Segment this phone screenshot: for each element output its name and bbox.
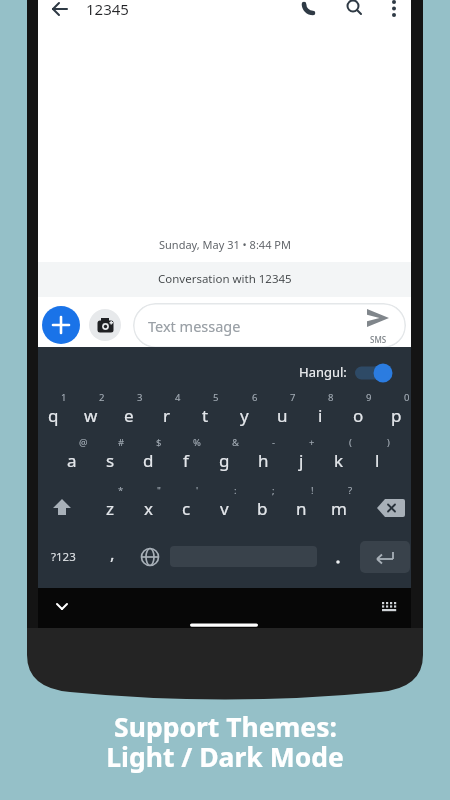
button[interactable]: l xyxy=(358,436,396,484)
staticText: 5 xyxy=(213,391,219,404)
button[interactable]: a xyxy=(53,436,91,484)
button[interactable]: , xyxy=(93,529,131,577)
button[interactable]: q xyxy=(34,391,72,439)
staticText: l xyxy=(375,449,380,472)
staticText: z xyxy=(106,497,114,520)
button[interactable] xyxy=(170,542,317,571)
button[interactable] xyxy=(333,0,373,29)
staticText: # xyxy=(118,436,125,449)
staticText: ? xyxy=(348,484,353,497)
staticText: : xyxy=(234,484,237,497)
button[interactable]: n xyxy=(282,484,320,532)
staticText: & xyxy=(232,436,239,449)
button[interactable]: k xyxy=(320,436,358,484)
button[interactable] xyxy=(40,0,80,29)
button[interactable]: x xyxy=(129,484,167,532)
staticText: % xyxy=(193,436,201,449)
staticText: Text message xyxy=(148,316,241,336)
staticText: ?123 xyxy=(51,549,76,565)
staticText: u xyxy=(277,404,288,427)
staticText: h xyxy=(258,449,269,472)
button[interactable] xyxy=(289,0,329,29)
button[interactable]: m xyxy=(320,484,358,532)
staticText: Hangul: xyxy=(299,363,347,381)
button[interactable] xyxy=(360,541,410,573)
button[interactable]: ?123 xyxy=(38,543,88,571)
staticText: g xyxy=(219,449,230,472)
button[interactable]: b xyxy=(243,484,281,532)
button[interactable]: s xyxy=(91,436,129,484)
staticText: w xyxy=(84,404,98,427)
button[interactable]: Text message xyxy=(133,303,406,348)
staticText: s xyxy=(106,449,115,472)
button[interactable] xyxy=(43,489,81,527)
staticText: Light / Dark Mode xyxy=(106,739,344,775)
button[interactable]: o xyxy=(339,391,377,439)
staticText: d xyxy=(143,449,154,472)
staticText: e xyxy=(124,404,134,427)
staticText: ; xyxy=(272,484,275,497)
button[interactable]: i xyxy=(301,391,339,439)
button[interactable]: f xyxy=(167,436,205,484)
staticText: y xyxy=(240,404,249,427)
staticText: k xyxy=(334,449,344,472)
button[interactable]: z xyxy=(91,484,129,532)
staticText: o xyxy=(353,404,364,427)
button[interactable]: u xyxy=(263,391,301,439)
staticText: 7 xyxy=(290,391,296,404)
staticText: 8 xyxy=(328,391,334,404)
button[interactable] xyxy=(351,362,395,384)
button[interactable]: v xyxy=(205,484,243,532)
staticText: * xyxy=(118,484,124,497)
staticText: m xyxy=(331,497,347,520)
staticText: t xyxy=(202,404,209,427)
staticText: c xyxy=(182,497,191,520)
staticText: ' xyxy=(196,484,199,497)
staticText: + xyxy=(309,436,315,449)
button[interactable] xyxy=(376,0,412,25)
staticText: Conversation with 12345 xyxy=(158,271,292,287)
staticText: f xyxy=(183,449,189,472)
button[interactable] xyxy=(89,309,121,341)
staticText: 12345 xyxy=(86,0,129,19)
staticText: , xyxy=(110,542,115,565)
button[interactable]: t xyxy=(186,391,224,439)
staticText: 6 xyxy=(252,391,258,404)
staticText: @ xyxy=(79,436,88,449)
staticText: b xyxy=(257,497,268,520)
staticText: - xyxy=(272,436,276,449)
button[interactable]: w xyxy=(72,391,110,439)
staticText: $ xyxy=(156,436,162,449)
staticText: ! xyxy=(311,484,314,497)
staticText: 0 xyxy=(404,391,410,404)
staticText: " xyxy=(157,484,161,497)
button[interactable] xyxy=(371,489,409,527)
button[interactable] xyxy=(42,306,80,344)
button[interactable]: p xyxy=(377,391,415,439)
button[interactable]: j xyxy=(282,436,320,484)
staticText: 1 xyxy=(61,391,67,404)
staticText: 2 xyxy=(99,391,105,404)
button[interactable]: d xyxy=(129,436,167,484)
staticText: SMS xyxy=(370,334,387,345)
staticText: Sunday, May 31 • 8:44 PM xyxy=(159,237,291,252)
button[interactable] xyxy=(319,538,357,576)
button[interactable] xyxy=(131,538,169,576)
button[interactable]: g xyxy=(205,436,243,484)
staticText: 9 xyxy=(366,391,372,404)
staticText: 3 xyxy=(137,391,143,404)
button[interactable] xyxy=(44,590,80,626)
staticText: p xyxy=(391,404,402,427)
button[interactable]: y xyxy=(225,391,263,439)
button[interactable]: r xyxy=(148,391,186,439)
staticText: ) xyxy=(387,436,390,449)
staticText: i xyxy=(318,404,323,427)
button[interactable] xyxy=(371,590,407,626)
button[interactable]: e xyxy=(110,391,148,439)
staticText: r xyxy=(163,404,171,427)
staticText: n xyxy=(296,497,307,520)
staticText: ( xyxy=(349,436,352,449)
staticText: a xyxy=(67,449,77,472)
button[interactable]: h xyxy=(244,436,282,484)
button[interactable]: c xyxy=(167,484,205,532)
